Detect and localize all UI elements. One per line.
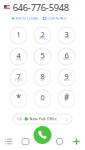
staticText: 7 (16, 71, 20, 81)
staticText (66, 99, 67, 103)
staticText: 9 (64, 71, 68, 81)
staticText: MNO (63, 57, 69, 61)
staticText: # (64, 92, 69, 103)
staticText: TUV (40, 78, 45, 82)
button[interactable]: 8 (30, 67, 54, 88)
staticText: 2 (40, 29, 44, 39)
staticText: 5 (40, 50, 44, 60)
staticText: Add to Contacts (16, 17, 38, 20)
staticText: New York Office (30, 117, 57, 121)
staticText: Clear Number (47, 17, 66, 20)
staticText: 4 (16, 50, 20, 60)
staticText: 0 (40, 92, 44, 102)
button[interactable]: 2 (30, 25, 54, 46)
button[interactable]: Contacts (51, 136, 68, 147)
button[interactable]: VIA (13, 114, 72, 124)
staticText: GHI (16, 57, 21, 61)
staticText: 3 (64, 29, 68, 39)
button[interactable]: 6 (54, 46, 78, 67)
button[interactable]: Call (33, 126, 51, 144)
button[interactable]: Clear Number (43, 15, 66, 21)
staticText: WXYZ (63, 78, 69, 82)
staticText: * (16, 91, 21, 104)
button[interactable]: 3 (54, 25, 78, 46)
button[interactable]: Recents (0, 136, 17, 147)
button[interactable]: 9 (54, 67, 78, 88)
staticText: ⌄ (65, 117, 68, 121)
staticText: 646-776-5948 (13, 1, 69, 14)
button[interactable]: Messages (17, 136, 34, 147)
button[interactable]: 4 (6, 46, 30, 67)
button[interactable]: 7 (6, 67, 30, 88)
button[interactable]: # (54, 88, 78, 109)
button[interactable]: 0 (30, 88, 54, 109)
staticText: 8 (40, 71, 44, 81)
staticText: PQRS (15, 78, 22, 82)
staticText: JKL (40, 57, 44, 61)
button[interactable]: Add to Contacts (11, 15, 38, 21)
staticText: DEF (64, 36, 68, 40)
staticText: ABC (39, 36, 45, 40)
button[interactable]: * (6, 88, 30, 109)
staticText: 6 (64, 50, 68, 60)
staticText (18, 36, 19, 40)
button[interactable]: 5 (30, 46, 54, 67)
staticText: VIA (17, 117, 22, 121)
button[interactable]: 1 (6, 25, 30, 46)
staticText (42, 99, 43, 103)
button[interactable]: Keypad (68, 136, 85, 147)
staticText: 1 (16, 29, 20, 39)
